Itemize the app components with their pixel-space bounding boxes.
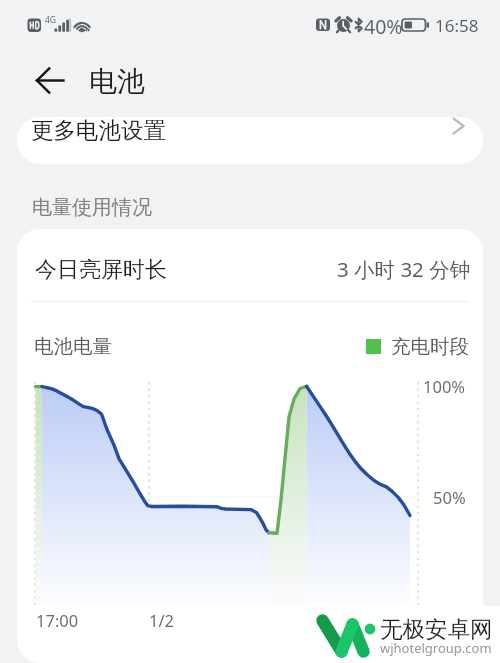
staticText: 电池 [89, 64, 145, 99]
staticText: wjhotelgroup.com [380, 639, 492, 657]
staticText: 1/2 [149, 609, 175, 631]
button[interactable]: 更多电池设置 [17, 117, 483, 164]
staticText: 电量使用情况 [32, 195, 152, 220]
staticText: 16:58 [435, 14, 479, 37]
staticText: 充电时段 [391, 334, 469, 359]
staticText: 无极安卓网 [380, 615, 493, 643]
staticText: 17:00 [36, 609, 79, 631]
staticText: 电池电量 [34, 334, 112, 359]
staticText: 100% [423, 375, 466, 397]
staticText: 今日亮屏时长 [35, 256, 167, 284]
staticText: 3 小时 32 分钟 [337, 255, 471, 283]
staticText: 40% [364, 13, 403, 40]
button[interactable]: Back [31, 61, 69, 99]
staticText: 4G [45, 14, 57, 26]
staticText: 50% [433, 486, 466, 508]
staticText: 更多电池设置 [31, 117, 166, 144]
